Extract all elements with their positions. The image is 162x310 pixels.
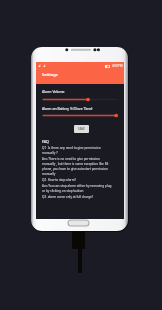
staticText: Q2 How to stop alarm? [42, 178, 76, 182]
staticText: Ans There is no need to give permission … [42, 157, 114, 176]
staticText: Ans You can stop alarm either by removin… [42, 184, 114, 193]
button[interactable] [42, 98, 118, 101]
staticText: 4:58 PM [112, 64, 123, 68]
staticText: Alarm Volume [42, 89, 65, 94]
staticText: Alarm on Battery % (Doze Time) [42, 106, 93, 111]
staticText: Q1 Is there any need to give permission … [42, 146, 114, 155]
button[interactable]: Home [68, 220, 89, 226]
button[interactable] [42, 114, 118, 117]
staticText: FAQ [42, 139, 49, 144]
staticText: Settings [42, 72, 58, 77]
staticText: Q3 alarm come only at full charge? [42, 195, 94, 199]
staticText: SAVE [78, 127, 86, 131]
button[interactable]: SAVE [74, 125, 89, 133]
